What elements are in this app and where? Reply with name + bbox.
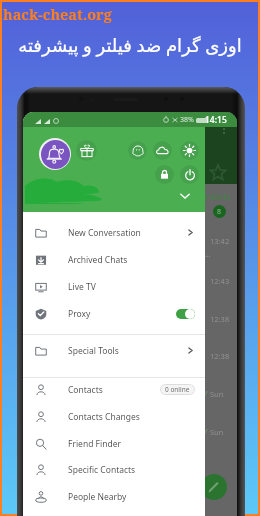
staticText: People Nearby: [68, 491, 127, 503]
button[interactable]: Day mode: [180, 141, 199, 160]
staticText: Proxy: [68, 308, 91, 320]
button[interactable]: Friend Finder: [23, 430, 205, 457]
staticText: Sun: [210, 427, 224, 437]
staticText: New Conversation: [68, 227, 141, 239]
staticText: Contacts: [68, 384, 103, 396]
staticText: 13:42: [210, 236, 230, 246]
button[interactable]: Profile: [39, 138, 71, 170]
staticText: Special Tools: [68, 345, 119, 357]
button[interactable]: Live TV: [23, 273, 205, 300]
staticText: Archived Chats: [68, 254, 128, 266]
staticText: hL...: [195, 248, 211, 259]
staticText: Friend Finder: [68, 438, 121, 450]
staticText: اوزی گرام ضد فیلتر و پیشرفته: [0, 33, 260, 58]
button[interactable]: Proxy: [23, 300, 205, 327]
button[interactable]: Expand: [178, 189, 192, 203]
button[interactable]: Power: [180, 165, 199, 184]
button[interactable]: Contacts Changes: [23, 403, 205, 430]
staticText: Contacts Changes: [68, 411, 140, 423]
staticText: 12:43: [210, 276, 230, 286]
staticText: 38%: [180, 115, 194, 125]
staticText: Live TV: [68, 281, 96, 293]
staticText: Specific Contacts: [68, 464, 136, 476]
button[interactable]: Night mode: [153, 141, 172, 160]
button[interactable]: Specific Contacts: [23, 456, 205, 483]
button[interactable]: New message: [201, 474, 227, 500]
button[interactable]: Special Tools: [23, 337, 205, 364]
button[interactable]: Archived Chats: [23, 246, 205, 273]
staticText: 12:38: [210, 351, 230, 361]
staticText: 0 online: [165, 385, 190, 394]
button[interactable]: Lock: [155, 165, 174, 184]
button[interactable]: New Conversation: [23, 219, 205, 246]
staticText: hack-cheat.org: [3, 4, 112, 24]
staticText: 12:38: [210, 314, 230, 324]
button[interactable]: People Nearby: [23, 483, 205, 510]
staticText: Sun: [210, 389, 224, 399]
staticText: 14:15: [205, 114, 227, 126]
button[interactable]: Ghost: [128, 141, 147, 160]
staticText: ontacts: [201, 191, 231, 203]
button[interactable]: Gifts: [76, 140, 97, 161]
staticText: 8: [217, 207, 222, 217]
button[interactable]: Contacts: [23, 376, 205, 403]
